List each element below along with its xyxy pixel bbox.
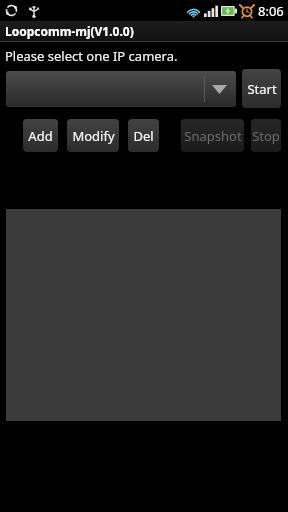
button[interactable]: Snapshot bbox=[181, 119, 244, 152]
button[interactable]: Del bbox=[128, 119, 159, 152]
button[interactable] bbox=[6, 71, 236, 107]
staticText: Start bbox=[247, 80, 277, 98]
staticText: Loopcomm-mj(V1.0.0) bbox=[5, 23, 134, 39]
staticText: 8:06 bbox=[258, 2, 284, 20]
staticText: Add bbox=[28, 127, 53, 145]
staticText: Modify bbox=[72, 127, 115, 145]
button[interactable]: Add bbox=[23, 119, 58, 152]
button[interactable]: Modify bbox=[67, 119, 119, 152]
button[interactable]: Start bbox=[242, 69, 281, 108]
staticText: Snapshot bbox=[184, 127, 242, 145]
staticText: Stop bbox=[252, 127, 280, 145]
staticText: Please select one IP camera. bbox=[5, 47, 178, 65]
button[interactable]: Stop bbox=[251, 119, 281, 152]
staticText: Del bbox=[133, 127, 154, 145]
